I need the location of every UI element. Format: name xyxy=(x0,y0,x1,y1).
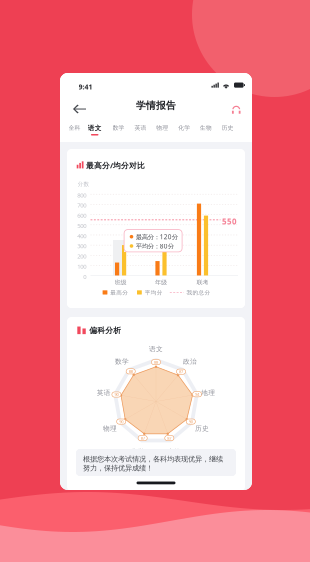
staticText: 90 xyxy=(114,392,118,397)
staticText: 数学 xyxy=(113,124,125,131)
staticText: 最高分 xyxy=(110,289,128,296)
staticText: 87 xyxy=(179,369,183,374)
staticText: 化学 xyxy=(178,124,190,131)
staticText: 政治 xyxy=(183,357,197,366)
staticText: 600 xyxy=(77,211,86,219)
staticText: 班级 xyxy=(114,278,126,286)
staticText: 物理 xyxy=(103,424,117,433)
button[interactable]: 历史 xyxy=(217,118,238,142)
button[interactable]: 返回 xyxy=(68,99,91,119)
staticText: 88 xyxy=(129,369,133,374)
button[interactable]: 化学 xyxy=(174,118,195,142)
staticText: 87 xyxy=(167,435,171,441)
staticText: 我的总分 xyxy=(186,289,210,296)
staticText: 87 xyxy=(141,435,145,441)
staticText: 历史 xyxy=(195,424,209,433)
staticText: 100 xyxy=(77,262,86,270)
staticText: 数学 xyxy=(115,357,129,366)
staticText: 语文 xyxy=(149,345,163,353)
button[interactable]: 数学 xyxy=(108,118,129,142)
staticText: 化学 xyxy=(131,448,145,456)
staticText: 物理 xyxy=(156,124,168,131)
staticText: 根据您本次考试情况，各科均表现优异，继续 xyxy=(83,454,223,464)
staticText: 平均分：80分 xyxy=(136,242,174,250)
staticText: 最高分：120分 xyxy=(136,232,178,241)
staticText: 94 xyxy=(195,391,199,397)
staticText: 400 xyxy=(77,232,86,240)
staticText: 联考 xyxy=(196,278,208,286)
staticText: 努力，保持优异成绩！ xyxy=(83,463,153,473)
staticText: 年级 xyxy=(155,278,167,286)
staticText: 历史 xyxy=(222,124,234,131)
button[interactable]: 生物 xyxy=(195,118,216,142)
staticText: 300 xyxy=(77,242,86,250)
staticText: 90 xyxy=(119,419,123,424)
staticText: 200 xyxy=(77,252,86,260)
button[interactable]: 英语 xyxy=(130,118,151,142)
button[interactable]: 全科 xyxy=(64,118,85,142)
button[interactable]: 语文 xyxy=(84,118,105,142)
staticText: 生物 xyxy=(200,124,212,131)
staticText: 550 xyxy=(222,216,237,227)
staticText: 分数 xyxy=(77,180,89,188)
staticText: 平均分 xyxy=(145,289,163,296)
staticText: 地理 xyxy=(201,389,215,397)
staticText: 800 xyxy=(77,191,86,199)
staticText: 最高分/均分对比 xyxy=(86,160,145,170)
staticText: 88 xyxy=(154,359,158,365)
staticText: 全科 xyxy=(68,124,80,131)
staticText: 偏科分析 xyxy=(89,325,121,335)
staticText: 500 xyxy=(77,222,86,230)
staticText: 英语 xyxy=(134,124,146,131)
staticText: 9:41 xyxy=(78,82,92,91)
staticText: 学情报告 xyxy=(136,99,176,112)
staticText: 90 xyxy=(189,419,193,424)
button[interactable]: 客服 xyxy=(226,99,246,119)
staticText: 生物 xyxy=(167,448,181,456)
staticText: 700 xyxy=(77,201,86,209)
staticText: 英语 xyxy=(97,389,111,397)
button[interactable]: 物理 xyxy=(152,118,173,142)
staticText: 语文 xyxy=(88,124,102,132)
staticText: 0 xyxy=(83,273,86,281)
